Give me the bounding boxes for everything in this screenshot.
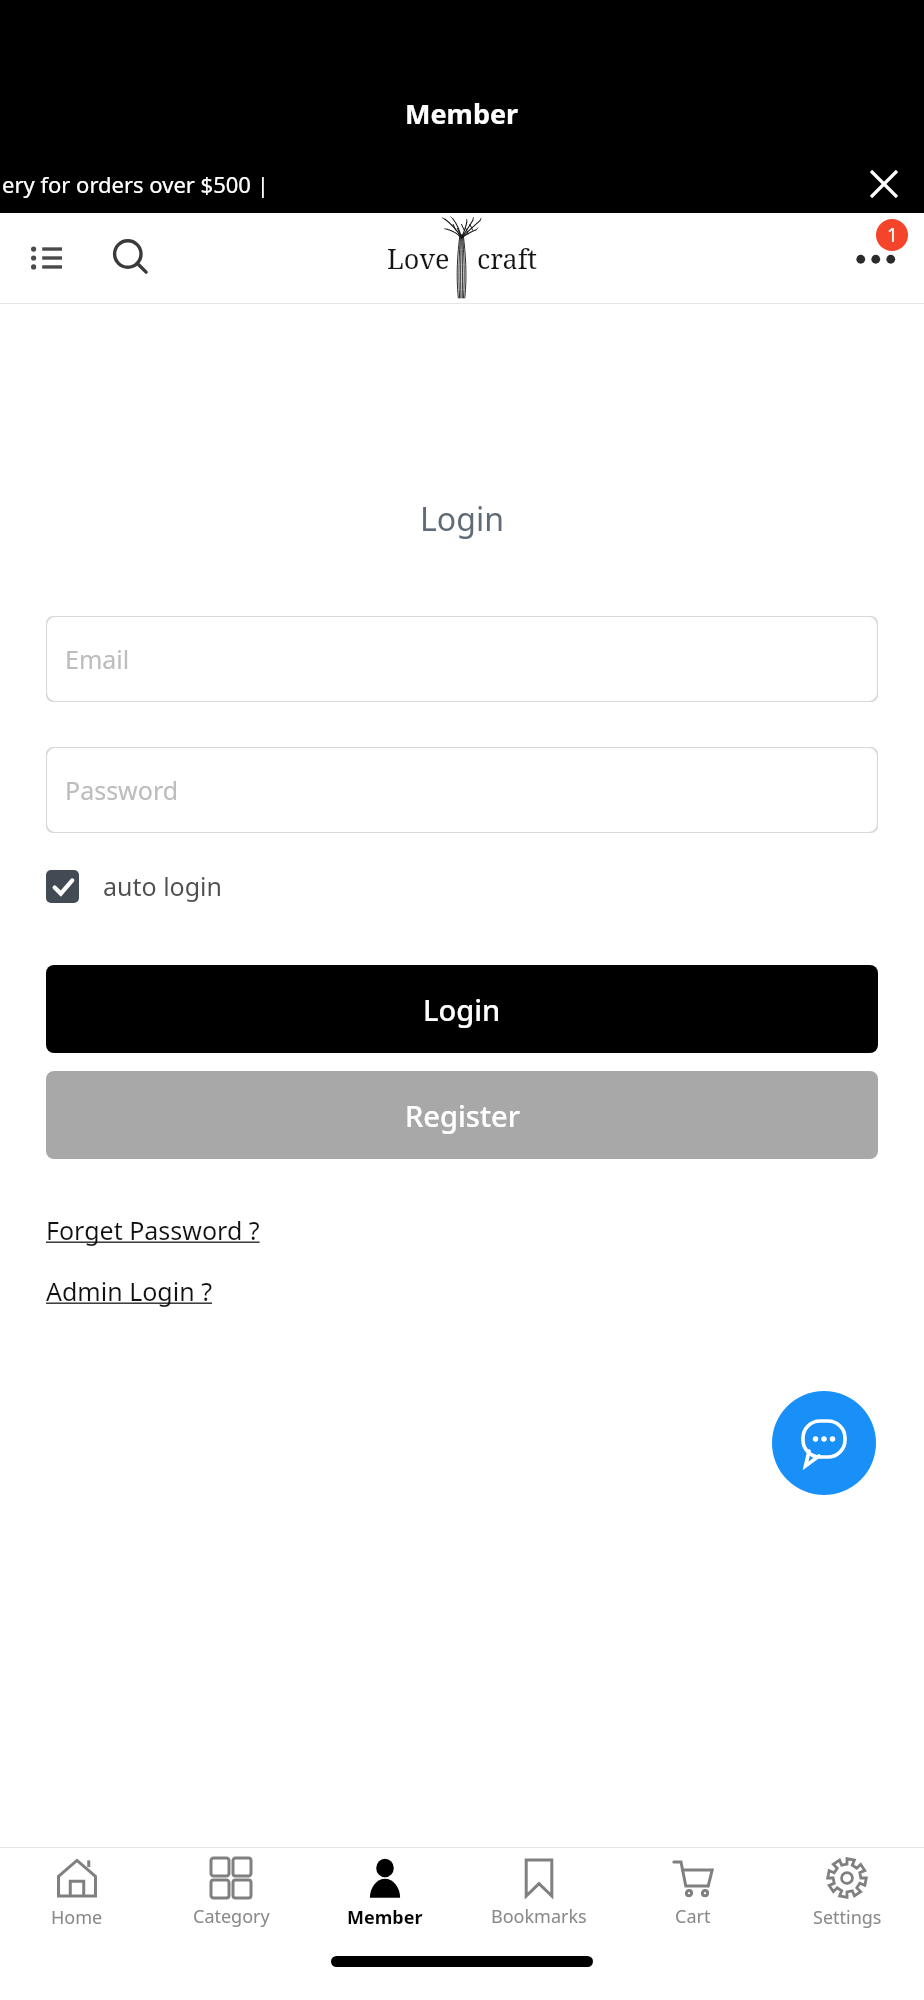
button[interactable]: Admin Login ? [46,1274,212,1308]
staticText: Register [405,1096,520,1135]
button[interactable]: Password [46,747,878,833]
staticText: Home [51,1905,103,1930]
button[interactable]: Login [46,965,878,1053]
staticText: Settings [813,1905,882,1930]
staticText: Login [423,990,501,1029]
button[interactable]: auto login [46,869,924,903]
staticText: Login [420,497,504,541]
button[interactable]: More options [846,227,908,289]
button[interactable]: Register [46,1071,878,1159]
button[interactable]: Settings [770,1848,924,1938]
button[interactable]: Bookmarks [462,1848,616,1938]
button[interactable]: Email [46,616,878,702]
button[interactable]: Category [154,1848,308,1938]
staticText: craft [477,240,538,277]
staticText: Category [193,1904,270,1929]
button[interactable]: Member [308,1848,462,1938]
staticText: 1 [887,222,898,248]
button[interactable]: Lovecraft home [387,216,538,300]
button[interactable]: Home [0,1848,154,1938]
staticText: Cart [675,1904,711,1929]
staticText: Password [65,773,179,807]
staticText: Bookmarks [491,1904,587,1929]
button[interactable]: Search [103,230,159,286]
staticText: Forget Password ? [46,1213,260,1247]
staticText: Love [387,240,450,277]
button[interactable]: Forget Password ? [46,1213,260,1247]
button[interactable]: Cart [616,1848,770,1938]
staticText: Email [65,642,130,676]
staticText: Member [347,1905,423,1930]
staticText: ery for orders over $500 | [2,169,269,199]
button[interactable]: Chat [772,1391,876,1495]
staticText: auto login [103,869,222,903]
staticText: Admin Login ? [46,1274,212,1308]
button[interactable]: Close banner [862,162,906,206]
button[interactable]: Menu [18,230,74,286]
staticText: Member [405,95,519,132]
